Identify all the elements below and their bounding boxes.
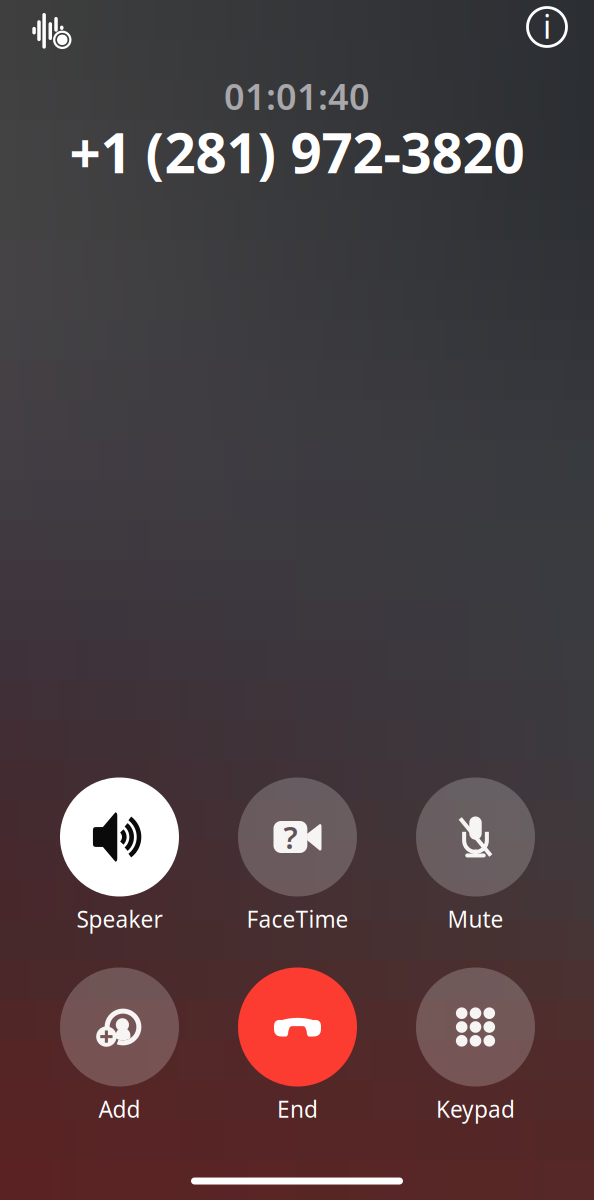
button[interactable]: Keypad xyxy=(386,967,564,1131)
button[interactable]: End xyxy=(208,967,386,1131)
staticText: End xyxy=(277,1094,318,1124)
staticText: +1 (281) 972-3820 xyxy=(69,116,524,188)
staticText: i xyxy=(543,5,551,48)
button[interactable]: Call details xyxy=(515,0,579,56)
button[interactable]: Speaker xyxy=(30,777,208,941)
staticText: Speaker xyxy=(76,904,162,934)
staticText: Mute xyxy=(447,904,503,934)
button[interactable]: Call recording xyxy=(19,2,83,60)
staticText: Keypad xyxy=(436,1094,515,1124)
button[interactable]: Mute xyxy=(386,777,564,941)
button[interactable]: ? xyxy=(208,777,386,941)
staticText: FaceTime xyxy=(246,904,348,934)
staticText: 01:01:40 xyxy=(224,72,370,120)
staticText: ? xyxy=(283,817,297,857)
staticText: Add xyxy=(98,1094,140,1124)
button[interactable]: Add xyxy=(30,967,208,1131)
